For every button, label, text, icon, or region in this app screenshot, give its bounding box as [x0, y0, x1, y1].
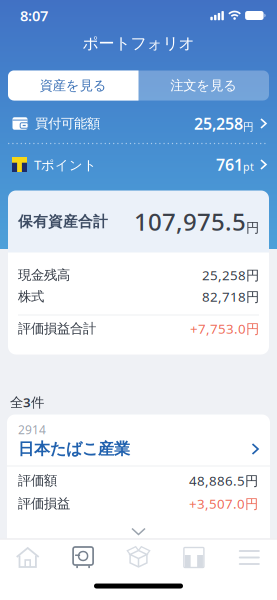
button[interactable]: Tポイント [0, 144, 277, 184]
staticText: 日本たばこ産業 [18, 439, 130, 459]
staticText: 評価損益合計 [18, 320, 96, 337]
staticText: 全3件 [10, 393, 44, 411]
staticText: 株式 [18, 288, 44, 305]
staticText: 48,886.5円 [189, 472, 258, 489]
staticText: 25,258円 [202, 266, 259, 284]
button[interactable]: メニュー [222, 546, 277, 568]
staticText: 評価損益 [18, 495, 70, 512]
staticText: ポートフォリオ [82, 34, 194, 53]
button[interactable]: 折りたたむ [7, 512, 270, 538]
staticText: 資産を見る [40, 77, 107, 94]
staticText: 8:07 [20, 6, 48, 25]
staticText: +3,507.0円 [189, 495, 258, 512]
staticText: 107,975.5円 [134, 206, 259, 237]
button[interactable]: 買付可能額 [0, 100, 277, 142]
button[interactable]: 資産を見る [8, 70, 138, 100]
button[interactable]: ポートフォリオ [55, 546, 111, 568]
staticText: 評価額 [18, 472, 57, 489]
staticText: 買付可能額 [35, 115, 100, 132]
staticText: 注文を見る [170, 77, 237, 94]
staticText: 2914 [18, 421, 46, 437]
staticText: +7,753.0円 [190, 320, 259, 337]
staticText: 761pt [216, 154, 254, 175]
button[interactable]: ホーム [0, 546, 55, 568]
staticText: 現金残高 [18, 267, 70, 283]
button[interactable]: Tポイント [166, 546, 222, 568]
button[interactable]: 注文を見る [138, 70, 269, 100]
staticText: 保有資産合計 [18, 212, 108, 230]
staticText: Tポイント [34, 156, 97, 173]
button[interactable]: 日本たばこ産業 [7, 436, 270, 461]
staticText: 82,718円 [202, 288, 259, 305]
staticText: 25,258円 [194, 113, 254, 134]
button[interactable]: 注文 [111, 546, 166, 568]
